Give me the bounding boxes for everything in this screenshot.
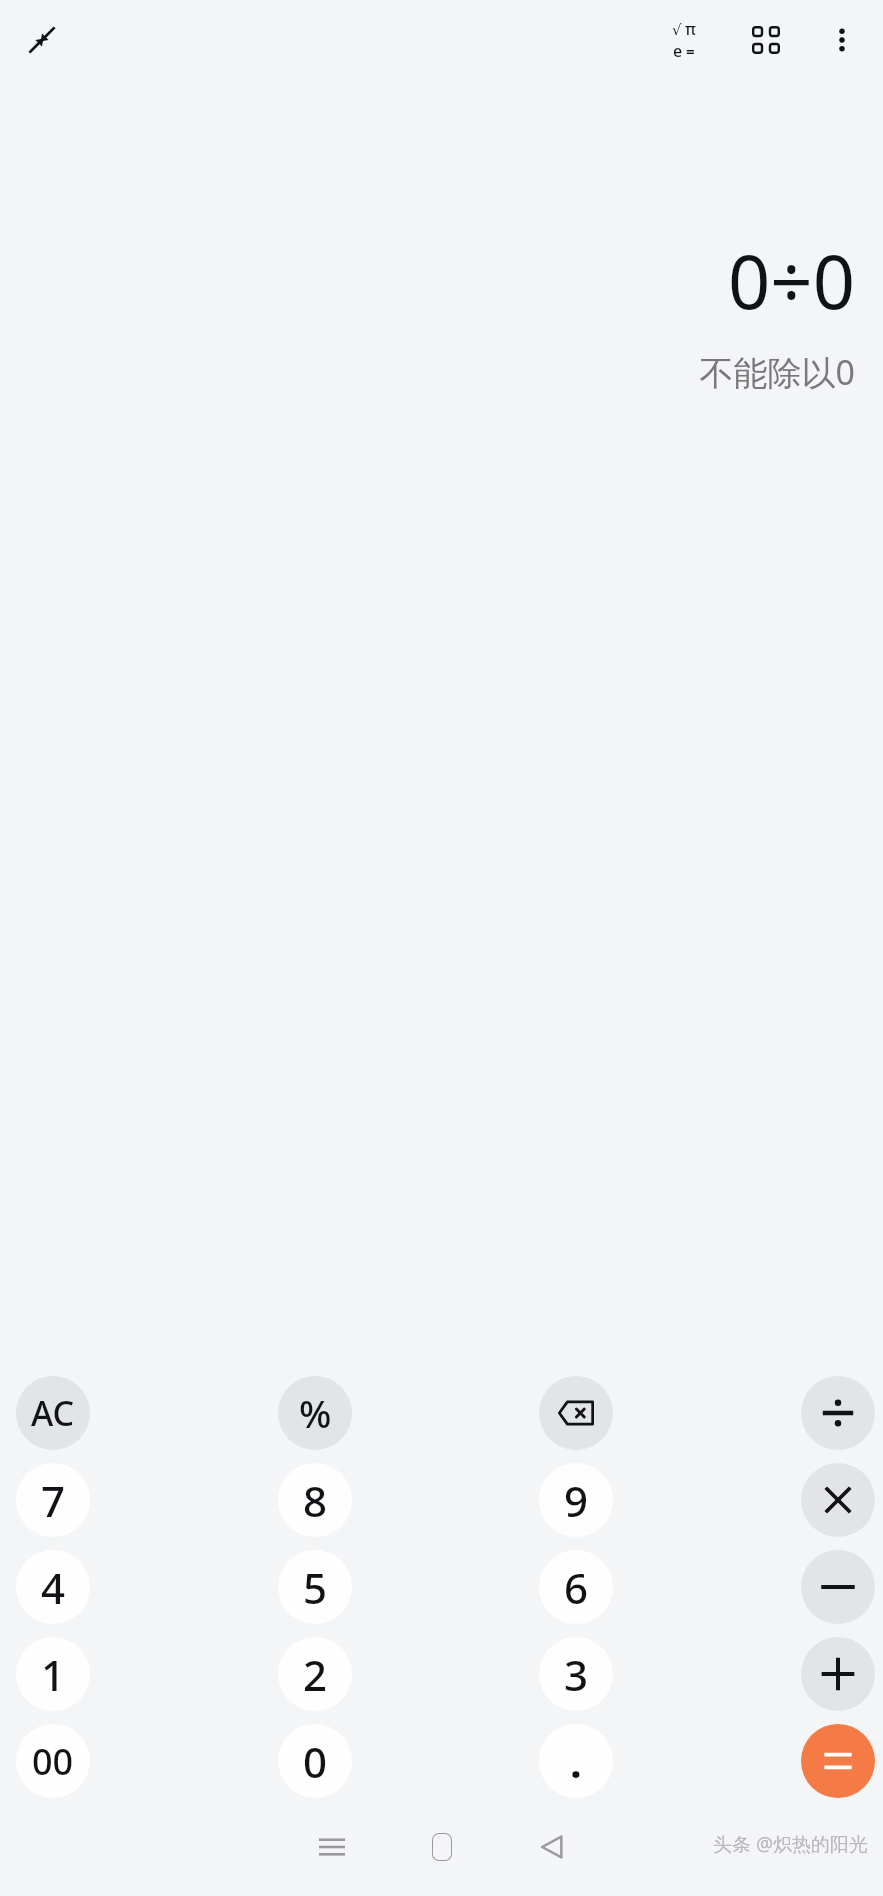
- button[interactable]: %: [278, 1376, 352, 1450]
- button[interactable]: Backspace: [539, 1376, 613, 1450]
- staticText: 5: [303, 1559, 328, 1616]
- button[interactable]: Multiply: [801, 1463, 875, 1537]
- button[interactable]: 0: [278, 1724, 352, 1798]
- staticText: 00: [32, 1737, 74, 1786]
- button[interactable]: 7: [16, 1463, 90, 1537]
- button[interactable]: Equals: [801, 1724, 875, 1798]
- staticText: 8: [303, 1472, 328, 1529]
- staticText: 6: [564, 1559, 589, 1616]
- button[interactable]: 5: [278, 1550, 352, 1624]
- staticText: 3: [564, 1646, 589, 1703]
- button[interactable]: Scientific mode: [653, 9, 715, 71]
- button[interactable]: Minus: [801, 1550, 875, 1624]
- staticText: 不能除以0: [699, 349, 855, 395]
- button[interactable]: Home: [407, 1812, 477, 1882]
- staticText: 1: [41, 1646, 66, 1703]
- button[interactable]: 9: [539, 1463, 613, 1537]
- button[interactable]: AC: [16, 1376, 90, 1450]
- staticText: 0: [303, 1733, 328, 1790]
- button[interactable]: More options: [811, 9, 873, 71]
- staticText: =: [686, 41, 695, 61]
- staticText: 2: [303, 1646, 328, 1703]
- staticText: e: [673, 40, 683, 62]
- button[interactable]: 4: [16, 1550, 90, 1624]
- button[interactable]: 2: [278, 1637, 352, 1711]
- staticText: 7: [41, 1472, 66, 1529]
- button[interactable]: 00: [16, 1724, 90, 1798]
- staticText: 头条 @炽热的阳光: [713, 1831, 869, 1857]
- button[interactable]: 8: [278, 1463, 352, 1537]
- button[interactable]: Collapse: [14, 12, 70, 68]
- button[interactable]: .: [539, 1724, 613, 1798]
- staticText: %: [299, 1387, 332, 1439]
- staticText: 9: [564, 1472, 589, 1529]
- button[interactable]: 3: [539, 1637, 613, 1711]
- button[interactable]: Plus: [801, 1637, 875, 1711]
- button[interactable]: 6: [539, 1550, 613, 1624]
- staticText: 4: [41, 1559, 66, 1616]
- button[interactable]: Unit converter: [735, 9, 797, 71]
- staticText: 0÷0: [728, 230, 855, 331]
- staticText: √: [672, 21, 682, 38]
- staticText: AC: [31, 1390, 75, 1436]
- button[interactable]: Back: [517, 1812, 587, 1882]
- button[interactable]: 1: [16, 1637, 90, 1711]
- staticText: π: [685, 18, 696, 40]
- staticText: .: [570, 1733, 582, 1790]
- button[interactable]: Recent apps: [297, 1812, 367, 1882]
- button[interactable]: Divide: [801, 1376, 875, 1450]
